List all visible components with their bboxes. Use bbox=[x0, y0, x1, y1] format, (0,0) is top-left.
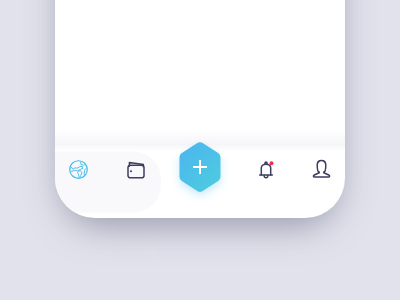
button[interactable]: Wallet bbox=[111, 133, 161, 218]
button[interactable]: Explore bbox=[55, 133, 105, 218]
button[interactable]: Notifications bbox=[241, 133, 291, 218]
button[interactable]: Add bbox=[178, 143, 222, 193]
button[interactable]: Profile bbox=[297, 133, 347, 218]
